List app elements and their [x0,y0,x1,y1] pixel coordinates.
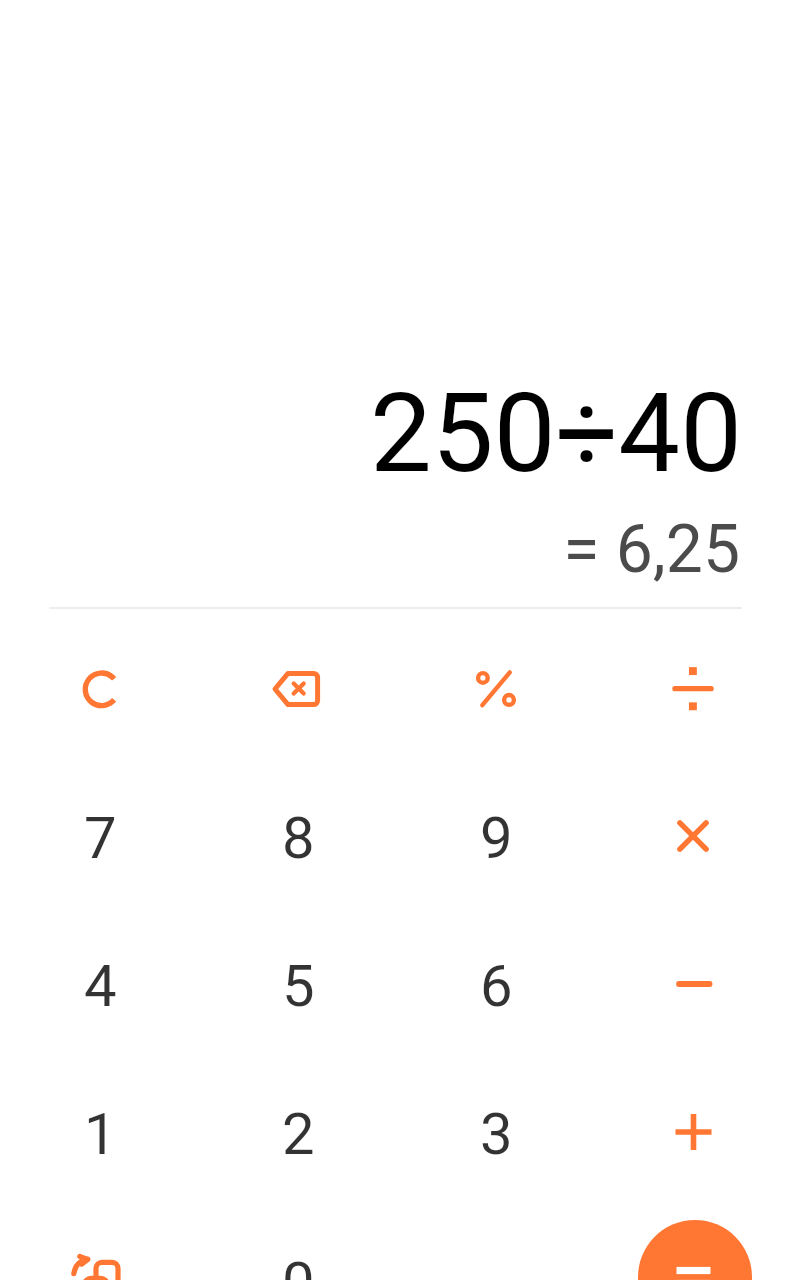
staticText: 9 [480,804,513,872]
button[interactable]: 1 [1,1054,199,1202]
staticText: 1 [84,1100,117,1168]
button[interactable]: 4 [1,906,199,1054]
button[interactable]: Backspace [199,614,397,762]
staticText: 0 [282,1249,315,1280]
button[interactable]: Equals [638,1220,752,1280]
staticText: = 6,25 [0,511,740,588]
button[interactable]: Minus [594,910,792,1058]
staticText: 2 [282,1100,315,1168]
button[interactable]: 7 [1,758,199,906]
button[interactable]: 3 [397,1054,595,1202]
button[interactable]: Multiply [594,762,792,910]
staticText: 8 [282,804,315,872]
staticText: 250÷40 [0,369,742,498]
staticText: 6 [480,952,513,1020]
button[interactable]: 6 [397,906,595,1054]
staticText: 7 [84,804,117,872]
button[interactable]: 2 [199,1054,397,1202]
button[interactable]: 5 [199,906,397,1054]
button[interactable]: Clear [1,614,199,762]
button[interactable]: History [1,1209,199,1280]
button[interactable]: Percent [397,614,595,762]
staticText: 5 [282,952,315,1020]
staticText: 4 [84,952,117,1020]
button[interactable]: Divide [594,614,792,762]
button[interactable]: 8 [199,758,397,906]
button[interactable]: 9 [397,758,595,906]
staticText: 3 [480,1100,513,1168]
button[interactable]: 0 [199,1203,397,1280]
button[interactable]: Plus [594,1058,792,1206]
